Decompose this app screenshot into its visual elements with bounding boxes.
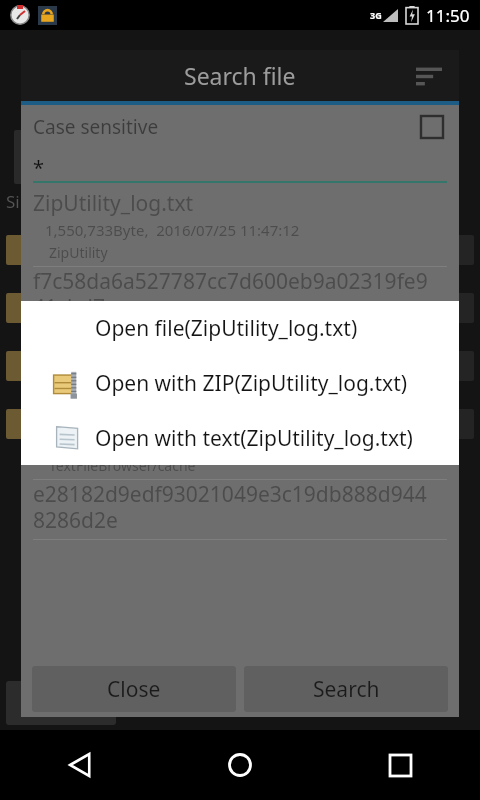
button[interactable]: Home <box>160 730 320 800</box>
staticText: f7c58da6a527787cc7d600eb9a02319fe9 41cbd… <box>33 267 428 322</box>
staticText: eed0097730cab2f849db31889743c241b 3fcc00… <box>33 376 425 431</box>
staticText: e28182d9edf93021049e3c19db888d944 8286d2… <box>33 480 427 535</box>
button[interactable]: eed0097730cab2f849db31889743c241b 3fcc00… <box>21 376 459 480</box>
button[interactable]: Open file(ZipUtility_log.txt) <box>21 301 459 356</box>
button[interactable]: Close <box>32 666 236 712</box>
staticText: Close <box>107 675 161 704</box>
staticText: Search <box>313 675 380 704</box>
staticText: 1,550,733Byte, 2016/07/25 11:47:12 <box>45 220 300 240</box>
button[interactable]: ZipUtility_log.txt <box>21 189 459 267</box>
staticText: 3G <box>370 9 382 21</box>
staticText: Si <box>6 190 20 213</box>
button[interactable]: Search <box>244 666 448 712</box>
button[interactable]: f7c58da6a527787cc7d600eb9a02319fe9 41cbd… <box>21 267 459 327</box>
button[interactable]: 2,977Byte, 2016/07/23 15:20:42 <box>21 327 459 376</box>
staticText: Open with ZIP(ZipUtility_log.txt) <box>95 369 408 398</box>
staticText: Open with text(ZipUtility_log.txt) <box>95 424 413 453</box>
button[interactable]: Sort <box>407 54 451 98</box>
button[interactable]: Back <box>0 730 160 800</box>
staticText: 2,977Byte, 2016/07/23 15:20:42 <box>45 433 270 453</box>
staticText: 2,977Byte, 2016/07/23 15:20:42 <box>45 329 270 349</box>
button[interactable]: e28182d9edf93021049e3c19db888d944 8286d2… <box>21 480 459 540</box>
staticText: 11:50 <box>426 4 470 27</box>
button[interactable]: Open with ZIP(ZipUtility_log.txt) <box>21 356 459 411</box>
button[interactable]: Recents <box>320 730 480 800</box>
staticText: Open file(ZipUtility_log.txt) <box>95 314 358 343</box>
button[interactable]: Open with text(ZipUtility_log.txt) <box>21 411 459 465</box>
staticText: * <box>33 154 45 181</box>
staticText: ZipUtility_log.txt <box>33 189 194 218</box>
staticText: Search file <box>184 60 296 91</box>
staticText: Case sensitive <box>33 114 159 140</box>
staticText: TextFileBrowser/cache <box>49 456 196 475</box>
button[interactable]: Case sensitive <box>21 105 459 149</box>
staticText: ZipUtility <box>49 243 108 262</box>
